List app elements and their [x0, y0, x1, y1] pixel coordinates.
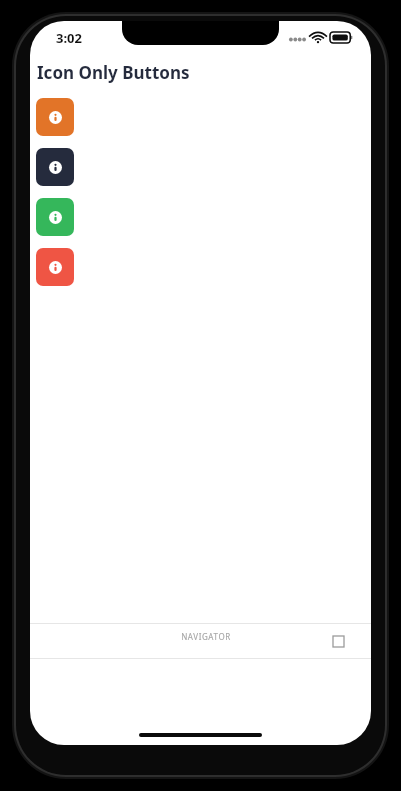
button[interactable]: Info red	[36, 248, 74, 286]
staticText: 3:02	[56, 29, 82, 47]
staticText: Icon Only Buttons	[37, 61, 190, 84]
button[interactable]: Info green	[36, 198, 74, 236]
button[interactable]: Info dark	[36, 148, 74, 186]
button[interactable]: Toggle panel	[327, 630, 349, 652]
staticText: NAVIGATOR	[181, 631, 231, 642]
button[interactable]: Info orange	[36, 98, 74, 136]
button[interactable]: NAVIGATOR	[41, 631, 371, 651]
